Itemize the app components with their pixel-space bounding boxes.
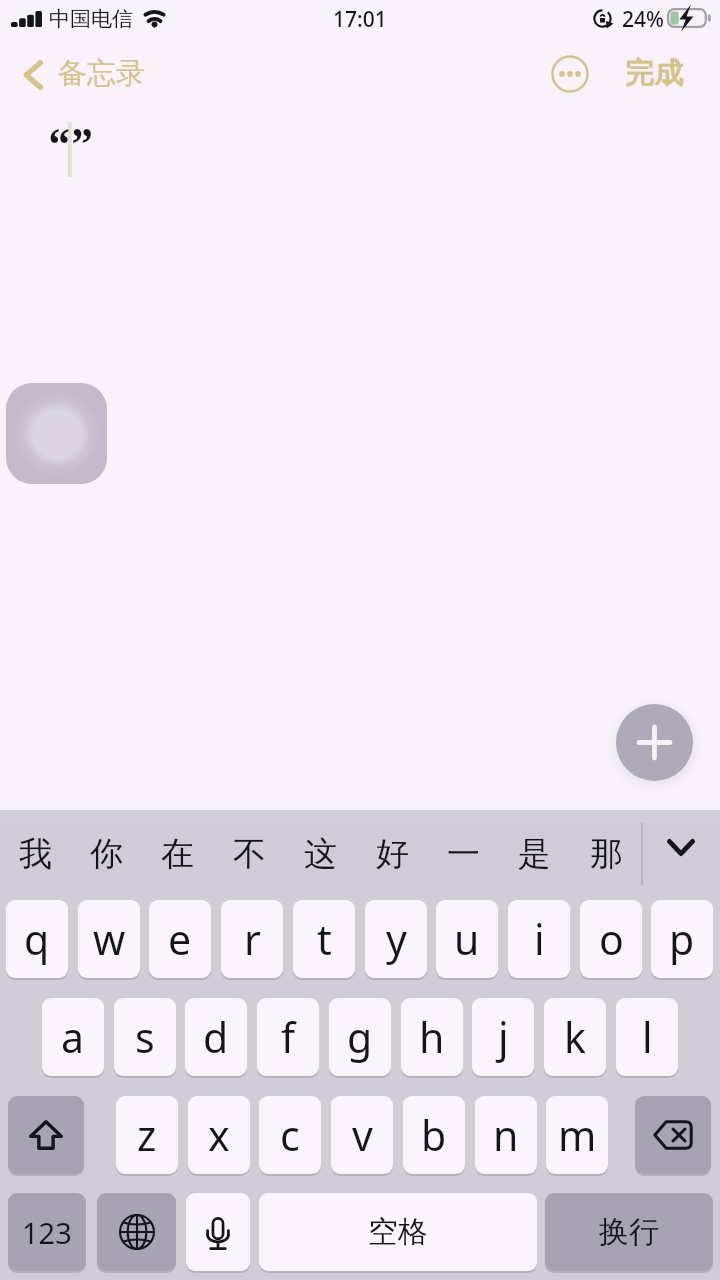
staticText: r (244, 911, 261, 967)
staticText: y (386, 911, 407, 967)
button[interactable]: f (257, 998, 319, 1076)
button[interactable]: s (114, 998, 176, 1076)
staticText: 在 (161, 833, 194, 875)
staticText: b (421, 1107, 447, 1163)
staticText: t (317, 911, 332, 967)
button[interactable]: p (651, 900, 713, 978)
staticText: 我 (19, 833, 52, 875)
button[interactable]: x (188, 1096, 250, 1174)
staticText: 17:01 (333, 5, 387, 31)
button[interactable]: 换行 (545, 1193, 713, 1271)
button[interactable]: Add (616, 704, 693, 781)
button[interactable]: 好 (357, 818, 428, 890)
button[interactable]: 在 (142, 818, 213, 890)
staticText: 一 (447, 833, 480, 875)
staticText: 空格 (368, 1213, 428, 1251)
staticText: u (454, 911, 480, 967)
staticText: c (280, 1107, 300, 1163)
button[interactable]: h (401, 998, 463, 1076)
button[interactable]: e (149, 900, 211, 978)
staticText: z (137, 1107, 157, 1163)
button[interactable]: d (185, 998, 247, 1076)
staticText: o (599, 911, 624, 967)
staticText: 这 (304, 833, 337, 875)
staticText: 24% (622, 5, 664, 31)
staticText: 完成 (625, 55, 683, 92)
button[interactable]: 那 (571, 818, 642, 890)
button[interactable]: 不 (214, 818, 285, 890)
button[interactable]: c (259, 1096, 321, 1174)
staticText: w (93, 911, 126, 967)
staticText: j (498, 1009, 509, 1065)
button[interactable]: u (436, 900, 498, 978)
staticText: x (208, 1107, 230, 1163)
staticText: p (669, 911, 695, 967)
button[interactable]: m (546, 1096, 608, 1174)
button[interactable]: Shift (8, 1096, 84, 1174)
button[interactable]: w (78, 900, 140, 978)
staticText: e (168, 911, 192, 967)
staticText: g (347, 1009, 373, 1065)
staticText: 换行 (599, 1213, 659, 1251)
staticText: 123 (22, 1213, 72, 1252)
button[interactable]: n (475, 1096, 537, 1174)
button[interactable]: 我 (0, 818, 71, 890)
button[interactable]: k (544, 998, 606, 1076)
button[interactable]: i (508, 900, 570, 978)
button[interactable]: l (616, 998, 678, 1076)
button[interactable]: j (472, 998, 534, 1076)
staticText: ” (71, 113, 94, 176)
staticText: “ (48, 113, 71, 176)
button[interactable]: a (42, 998, 104, 1076)
button[interactable]: 这 (285, 818, 356, 890)
button[interactable]: More options (546, 50, 593, 97)
button[interactable]: g (329, 998, 391, 1076)
button[interactable]: Assistive Touch (6, 383, 107, 484)
staticText: a (61, 1009, 85, 1065)
staticText: l (642, 1009, 653, 1065)
staticText: f (281, 1009, 296, 1065)
staticText: 不 (233, 833, 266, 875)
staticText: m (558, 1107, 597, 1163)
staticText: v (352, 1107, 373, 1163)
staticText: d (203, 1009, 229, 1065)
button[interactable]: Backspace (635, 1096, 711, 1174)
button[interactable]: 空格 (259, 1193, 537, 1271)
button[interactable]: y (365, 900, 427, 978)
button[interactable]: Voice input (186, 1193, 250, 1271)
staticText: 备忘录 (58, 55, 145, 92)
button[interactable]: Hide keyboard (648, 818, 714, 890)
staticText: 是 (518, 833, 551, 875)
button[interactable]: Switch language (97, 1193, 176, 1271)
staticText: i (534, 911, 545, 967)
staticText: 中国电信 (49, 6, 133, 32)
staticText: h (419, 1009, 445, 1065)
staticText: n (493, 1107, 519, 1163)
button[interactable]: Note text (0, 106, 720, 810)
button[interactable]: 备忘录 (8, 46, 168, 100)
staticText: q (24, 911, 50, 967)
staticText: s (135, 1009, 155, 1065)
button[interactable]: q (6, 900, 68, 978)
button[interactable]: 是 (499, 818, 570, 890)
button[interactable]: Numbers (8, 1193, 86, 1271)
staticText: 你 (90, 833, 123, 875)
staticText: k (564, 1009, 586, 1065)
button[interactable]: v (331, 1096, 393, 1174)
button[interactable]: 一 (428, 818, 499, 890)
button[interactable]: r (221, 900, 283, 978)
button[interactable]: b (403, 1096, 465, 1174)
button[interactable]: t (293, 900, 355, 978)
button[interactable]: o (580, 900, 642, 978)
staticText: 那 (590, 833, 623, 875)
staticText: 好 (376, 833, 409, 875)
button[interactable]: z (116, 1096, 178, 1174)
button[interactable]: 你 (71, 818, 142, 890)
button[interactable]: 完成 (616, 50, 692, 96)
